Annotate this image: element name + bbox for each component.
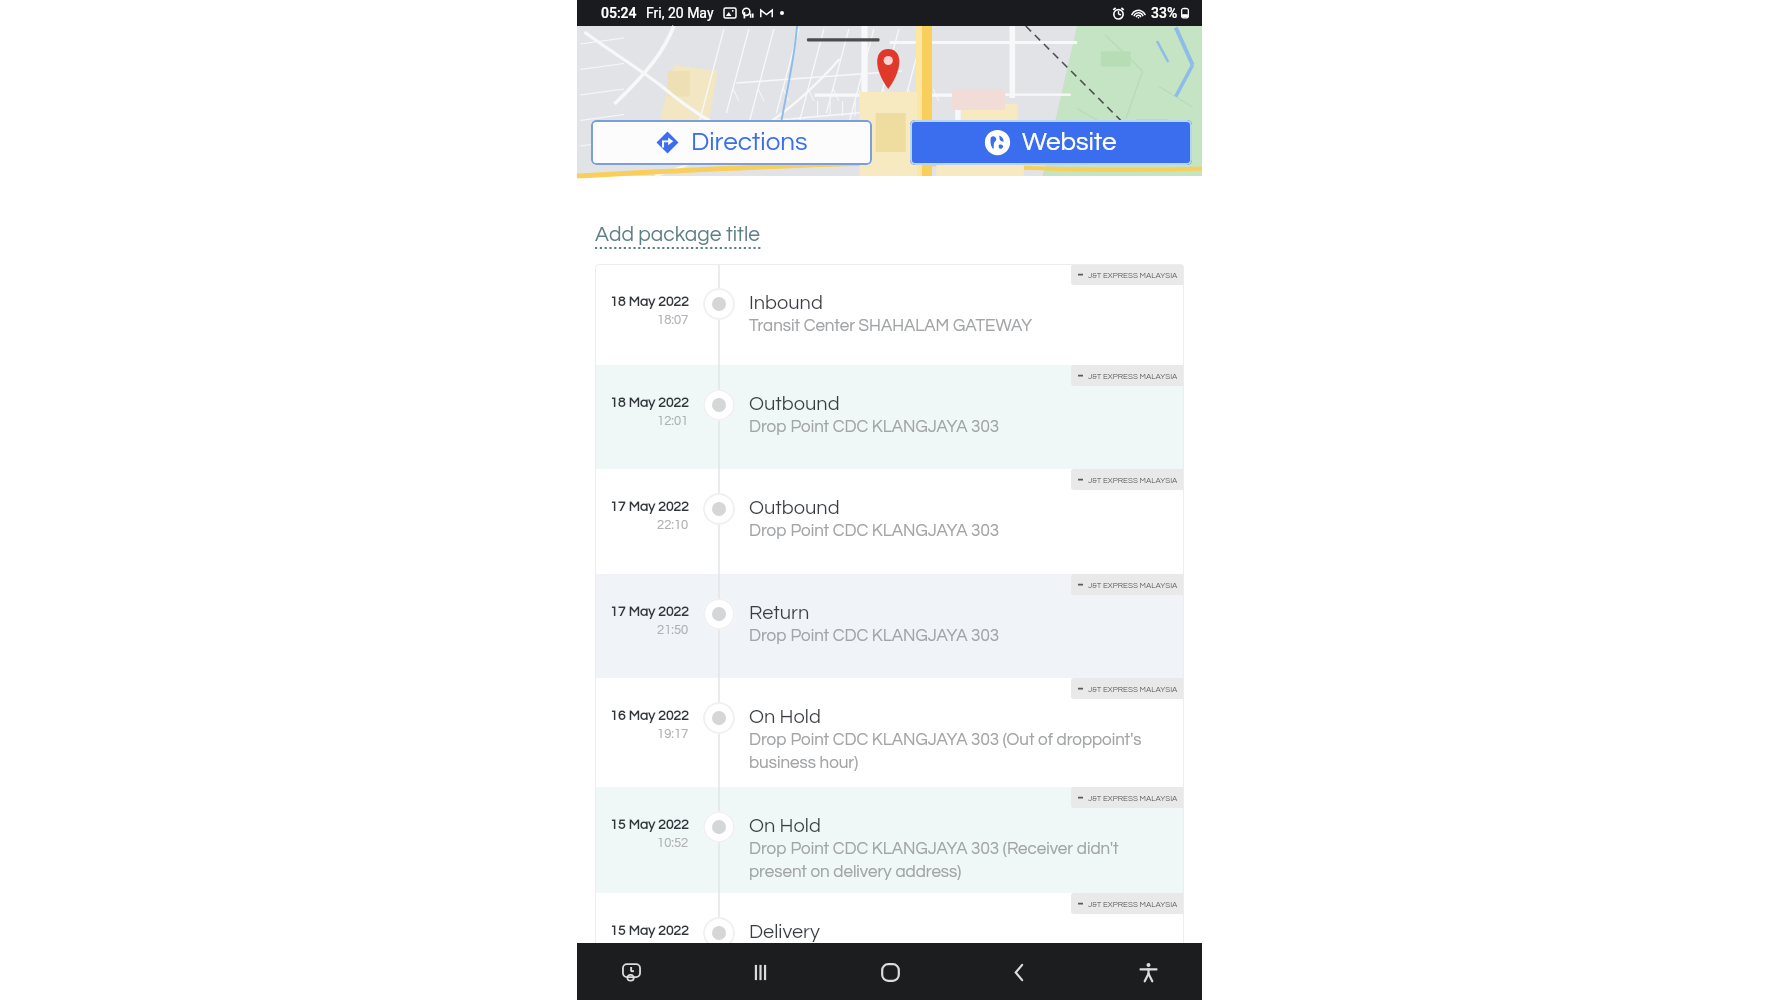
- button[interactable]: Website: [910, 120, 1192, 165]
- button[interactable]: Accessibility: [1126, 950, 1170, 994]
- staticText: 05:24: [601, 5, 637, 21]
- button[interactable]: Screen recorder: [609, 950, 653, 994]
- staticText: Outbound: [749, 498, 840, 519]
- staticText: 17 May 2022: [610, 500, 689, 514]
- staticText: Drop Point CDC KLANGJAYA 303: [749, 522, 1000, 540]
- staticText: J&T EXPRESS MALAYSIA: [1088, 685, 1178, 693]
- staticText: 33%: [1151, 5, 1178, 21]
- staticText: 19:17: [657, 727, 689, 740]
- staticText: Delivery: [749, 922, 820, 943]
- staticText: 10:12: [657, 942, 689, 955]
- button[interactable]: Recent apps: [738, 950, 782, 994]
- staticText: J&T EXPRESS MALAYSIA: [1088, 372, 1178, 380]
- staticText: Return: [749, 603, 810, 624]
- staticText: J&T EXPRESS MALAYSIA: [1088, 476, 1178, 484]
- button[interactable]: 18 May 2022: [595, 264, 1184, 365]
- staticText: 21:50: [657, 623, 689, 636]
- staticText: Directions: [691, 129, 808, 156]
- staticText: Drop Point CDC KLANGJAYA 303: [749, 418, 1000, 436]
- button[interactable]: 17 May 2022: [595, 469, 1184, 574]
- staticText: Fri, 20 May: [646, 5, 714, 21]
- staticText: Drop Point CDC KLANGJAYA 303: [749, 627, 1000, 645]
- button[interactable]: Back: [997, 950, 1041, 994]
- staticText: 18 May 2022: [610, 396, 689, 410]
- staticText: J&T EXPRESS MALAYSIA: [1088, 271, 1178, 279]
- button[interactable]: Home: [868, 950, 912, 994]
- button[interactable]: 17 May 2022: [595, 574, 1184, 678]
- staticText: Website: [1022, 129, 1117, 156]
- button[interactable]: 18 May 2022: [595, 365, 1184, 469]
- staticText: 12:01: [657, 414, 689, 427]
- staticText: 18:07: [657, 313, 689, 326]
- button[interactable]: Add package title: [595, 224, 762, 249]
- button[interactable]: Directions: [591, 120, 872, 165]
- staticText: J&T EXPRESS MALAYSIA: [1088, 581, 1178, 589]
- staticText: 22:10: [657, 518, 689, 531]
- staticText: J&T EXPRESS MALAYSIA: [1088, 794, 1178, 802]
- staticText: Transit Center SHAHALAM GATEWAY: [749, 317, 1032, 335]
- staticText: Outbound: [749, 394, 840, 415]
- staticText: 15 May 2022: [610, 924, 689, 938]
- button[interactable]: 15 May 2022: [595, 893, 1184, 963]
- staticText: Add package title: [595, 224, 760, 246]
- staticText: J&T EXPRESS MALAYSIA: [1088, 900, 1178, 908]
- staticText: Drop Point CDC KLANGJAYA 303 (Out of dro…: [749, 731, 1142, 772]
- button[interactable]: 15 May 2022: [595, 787, 1184, 893]
- staticText: 18 May 2022: [610, 295, 689, 309]
- staticText: Inbound: [749, 293, 823, 314]
- staticText: 16 May 2022: [610, 709, 689, 723]
- staticText: Drop Point CDC KLANGJAYA 303 (Receiver d…: [749, 840, 1119, 881]
- staticText: On Hold: [749, 816, 821, 837]
- staticText: 15 May 2022: [610, 818, 689, 832]
- button[interactable]: 16 May 2022: [595, 678, 1184, 787]
- staticText: On Hold: [749, 707, 821, 728]
- staticText: 17 May 2022: [610, 605, 689, 619]
- staticText: 10:52: [657, 836, 689, 849]
